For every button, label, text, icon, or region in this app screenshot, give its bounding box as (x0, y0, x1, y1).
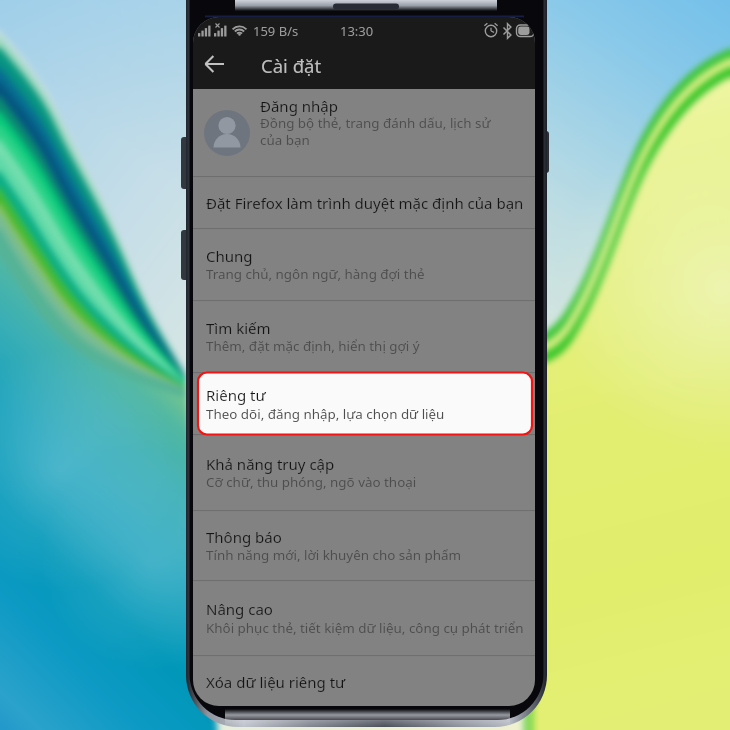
staticText: Riêng tư (206, 385, 266, 405)
staticText: Cài đặt (261, 53, 322, 78)
staticText: Nâng cao (206, 599, 273, 619)
button[interactable]: Riêng tư (198, 373, 532, 435)
staticText: 13:30 (340, 22, 374, 40)
button[interactable]: Riêng tư (193, 372, 535, 434)
button[interactable]: Đặt Firefox làm trình duyệt mặc định của… (193, 176, 535, 228)
staticText: Tìm kiếm (206, 318, 271, 338)
staticText: Đồng bộ thẻ, trang đánh dấu, lịch sử của… (260, 114, 510, 149)
button[interactable]: Nâng cao (193, 580, 535, 655)
staticText: Xóa dữ liệu riêng tư (206, 672, 346, 692)
button[interactable]: Khả năng truy cập (193, 434, 535, 510)
staticText: Trang chủ, ngôn ngữ, hàng đợi thẻ (206, 265, 425, 283)
staticText: Thông báo (206, 527, 282, 547)
staticText: Riêng tư (206, 385, 266, 405)
staticText: Thêm, đặt mặc định, hiển thị gợi ý (206, 337, 420, 355)
staticText: Chung (206, 246, 253, 266)
button[interactable]: Back (197, 43, 239, 85)
button[interactable]: Đăng nhập (193, 89, 535, 176)
button[interactable]: Xóa dữ liệu riêng tư (193, 655, 535, 706)
button[interactable]: Tìm kiếm (193, 300, 535, 372)
staticText: Đặt Firefox làm trình duyệt mặc định của… (206, 193, 524, 213)
button[interactable]: Chung (193, 228, 535, 300)
button[interactable]: Thông báo (193, 510, 535, 580)
staticText: Theo dõi, đăng nhập, lựa chọn dữ liệu (206, 405, 445, 423)
staticText: Theo dõi, đăng nhập, lựa chọn dữ liệu (206, 404, 445, 422)
staticText: Tính năng mới, lời khuyên cho sản phẩm (206, 546, 461, 564)
staticText: 159 B/s (253, 22, 299, 40)
staticText: Đăng nhập (260, 96, 338, 116)
staticText: Khả năng truy cập (206, 454, 335, 474)
staticText: Khôi phục thẻ, tiết kiệm dữ liệu, công c… (206, 619, 524, 637)
staticText: Cỡ chữ, thu phóng, ngõ vào thoại (206, 473, 417, 491)
